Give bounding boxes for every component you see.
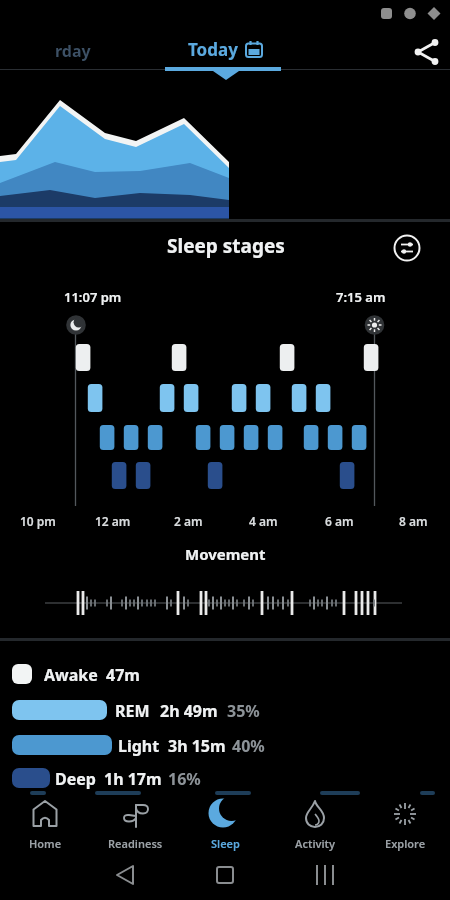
- button[interactable]: rday: [30, 34, 120, 66]
- staticText: 47m: [106, 664, 140, 686]
- button[interactable]: Explore: [369, 794, 441, 854]
- button[interactable]: Readiness: [99, 794, 171, 854]
- staticText: 1h 17m: [104, 768, 162, 790]
- staticText: Light: [118, 735, 160, 757]
- button[interactable]: Today: [175, 32, 275, 66]
- staticText: 35%: [227, 700, 260, 722]
- staticText: REM: [115, 700, 150, 722]
- staticText: 12 am: [95, 513, 131, 529]
- staticText: 11:07 pm: [64, 288, 122, 306]
- staticText: Movement: [185, 544, 266, 564]
- staticText: Today: [188, 38, 238, 61]
- staticText: 40%: [232, 735, 265, 757]
- staticText: Awake: [44, 664, 98, 686]
- staticText: 4 am: [249, 513, 278, 529]
- staticText: Readiness: [108, 836, 163, 851]
- staticText: rday: [55, 40, 91, 62]
- staticText: 10 pm: [20, 513, 56, 529]
- staticText: 2 am: [174, 513, 203, 529]
- staticText: 8 am: [399, 513, 428, 529]
- button[interactable]: [95, 856, 155, 894]
- button[interactable]: [391, 232, 423, 264]
- staticText: 6 am: [325, 513, 354, 529]
- staticText: 3h 15m: [168, 735, 226, 757]
- button[interactable]: [408, 34, 446, 68]
- staticText: 7:15 am: [336, 288, 386, 306]
- staticText: Deep: [55, 768, 96, 790]
- staticText: Sleep stages: [167, 233, 285, 259]
- staticText: Activity: [295, 836, 336, 851]
- button[interactable]: [295, 856, 355, 894]
- button[interactable]: Home: [9, 794, 81, 854]
- staticText: 2h 49m: [160, 700, 218, 722]
- button[interactable]: [195, 856, 255, 894]
- staticText: Sleep: [211, 836, 240, 851]
- staticText: 16%: [168, 768, 201, 790]
- button[interactable]: Sleep: [189, 794, 261, 854]
- staticText: Explore: [385, 836, 426, 851]
- staticText: Home: [29, 836, 62, 851]
- button[interactable]: Activity: [279, 794, 351, 854]
